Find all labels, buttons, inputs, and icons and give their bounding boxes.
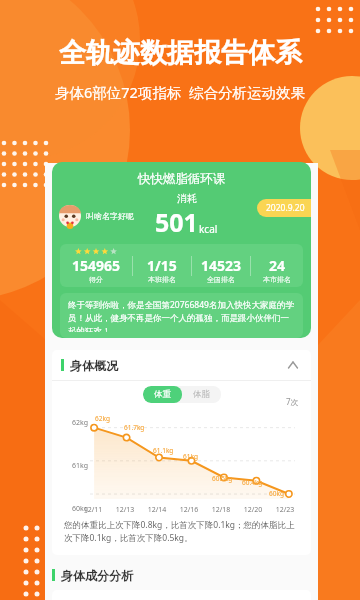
staticText: 快快燃脂循环课 <box>52 171 311 187</box>
staticText: 62kg <box>95 414 110 423</box>
button[interactable]: 2020.9.20 <box>257 199 311 217</box>
staticText: 得分 <box>89 275 103 284</box>
button[interactable]: 身体成分分析 <box>52 563 133 587</box>
staticText: 7次 <box>286 396 299 407</box>
staticText: 60kg <box>269 489 284 498</box>
staticText: 您的体重比上次下降0.8kg，比首次下降0.1kg；您的体脂比上次下降0.1kg… <box>64 519 299 544</box>
staticText: 全国排名 <box>207 275 235 284</box>
button[interactable]: 14523 <box>192 248 250 284</box>
staticText: 60.4kg <box>242 478 263 487</box>
staticText: 154965 <box>72 256 121 275</box>
staticText: 1/15 <box>147 256 177 275</box>
staticText: 身体6部位72项指标 综合分析运动效果 <box>55 82 305 102</box>
staticText: 叫啥名字好呢 <box>86 211 134 221</box>
button[interactable]: 24 <box>251 248 303 284</box>
staticText: 62kg <box>58 418 88 428</box>
staticText: 61kg <box>183 452 198 461</box>
button[interactable]: 154965 <box>60 248 132 284</box>
staticText: 61.7kg <box>124 423 145 432</box>
staticText: 60.5kg <box>212 474 233 483</box>
staticText: 12/20 <box>237 505 269 515</box>
staticText: 身体成分分析 <box>61 568 133 583</box>
staticText: 24 <box>269 256 286 275</box>
staticText: 消耗 <box>177 192 197 205</box>
staticText: 12/11 <box>77 505 109 515</box>
staticText: 501 <box>155 205 198 239</box>
staticText: 12/16 <box>173 505 205 515</box>
button[interactable]: 1/15 <box>133 248 191 284</box>
staticText: 本市排名 <box>263 275 291 284</box>
staticText: 61.1kg <box>153 446 174 455</box>
staticText: 12/18 <box>205 505 237 515</box>
button[interactable]: 体脂 <box>182 386 221 403</box>
staticText: 身体概况 <box>70 358 118 373</box>
button[interactable]: 身体概况 <box>52 350 311 380</box>
staticText: 14523 <box>201 256 242 275</box>
staticText: 61kg <box>58 461 88 471</box>
other: Collapse <box>285 356 301 374</box>
button[interactable]: 快快燃脂循环课 <box>52 162 311 338</box>
staticText: 60kg <box>58 504 88 514</box>
staticText: 终于等到你啦，你是全国第20766849名加入快快大家庭的学员！从此，健身不再是… <box>68 299 295 332</box>
staticText: 体重 <box>154 389 171 400</box>
button[interactable]: 体重 <box>143 386 182 403</box>
staticText: 12/14 <box>141 505 173 515</box>
staticText: 全轨迹数据报告体系 <box>59 36 302 70</box>
staticText: 12/13 <box>109 505 141 515</box>
staticText: 本班排名 <box>148 275 176 284</box>
staticText: kcal <box>199 222 218 236</box>
staticText: 体脂 <box>193 389 210 400</box>
staticText: 2020.9.20 <box>266 202 305 214</box>
staticText: 12/23 <box>269 505 301 515</box>
